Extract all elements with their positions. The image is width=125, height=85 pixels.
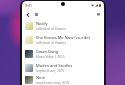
staticText: Notify: [36, 21, 48, 26]
staticText: Modes and Studies: [36, 63, 73, 68]
button[interactable]: Modes and Studies: [22, 61, 104, 75]
staticText: Nine: [36, 75, 45, 80]
staticText: She Knows Me Now (co-edit): [36, 35, 90, 40]
staticText: Gwan Gong: [36, 49, 59, 54]
button[interactable]: She Knows Me Now (co-edit): [22, 33, 104, 47]
staticText: mushroom story 2015: [36, 81, 70, 85]
button[interactable]: Gwan Gong: [22, 47, 104, 61]
button[interactable]: More options: [94, 10, 103, 19]
staticText: collection of flowers: [36, 27, 66, 31]
button[interactable]: Nine: [22, 75, 104, 85]
staticText: Sophie Dunn, 2015: [36, 69, 65, 73]
button[interactable]: Notify: [22, 19, 104, 33]
staticText: collection of flowers: [36, 41, 66, 45]
button[interactable]: Collection: [32, 10, 41, 19]
staticText: 9:41: [25, 3, 33, 8]
staticText: Music Video | 2015: [36, 55, 65, 59]
button[interactable]: Back: [23, 10, 32, 19]
